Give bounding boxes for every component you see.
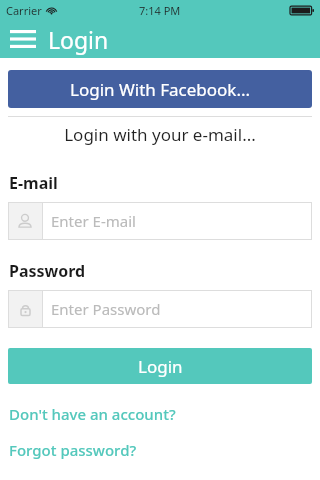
button[interactable]: Forgot password? xyxy=(0,440,320,460)
button[interactable]: Menu xyxy=(6,22,40,56)
button[interactable]: Login With Facebook... xyxy=(8,70,312,108)
staticText: Login with your e-mail... xyxy=(0,123,320,146)
staticText: Enter E-mail xyxy=(51,211,136,231)
staticText: Forgot password? xyxy=(9,440,137,460)
staticText: E-mail xyxy=(9,172,320,194)
button[interactable]: Don't have an account? xyxy=(0,404,320,424)
staticText: 7:14 PM xyxy=(139,3,181,18)
button[interactable]: Enter E-mail xyxy=(8,202,312,240)
staticText: Carrier xyxy=(6,3,42,18)
staticText: Login xyxy=(138,355,183,378)
staticText: Enter Password xyxy=(51,299,161,319)
staticText: Login With Facebook... xyxy=(70,78,251,101)
button[interactable]: Login xyxy=(8,348,312,384)
staticText: Password xyxy=(9,260,320,282)
staticText: Don't have an account? xyxy=(9,404,176,424)
staticText: Login xyxy=(48,24,109,55)
button[interactable]: Enter Password xyxy=(8,290,312,328)
